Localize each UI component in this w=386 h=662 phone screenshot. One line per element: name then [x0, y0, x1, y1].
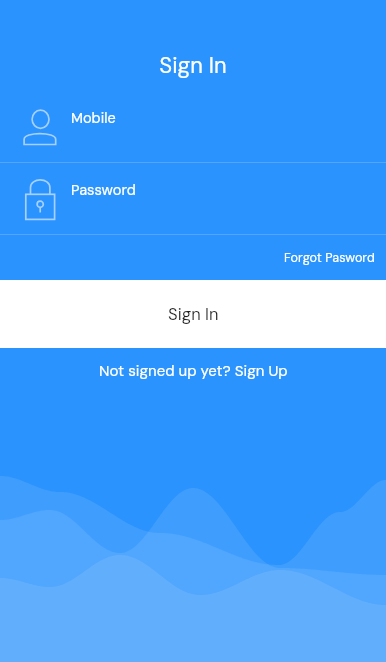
- staticText: Forgot Pasword: [284, 250, 375, 266]
- button[interactable]: Sign In: [0, 280, 386, 348]
- staticText: Sign In: [168, 304, 219, 325]
- button[interactable]: Forgot Pasword: [273, 242, 386, 274]
- button[interactable]: Password: [0, 163, 386, 235]
- button[interactable]: Mobile: [0, 90, 386, 162]
- staticText: Sign In: [0, 51, 386, 80]
- button[interactable]: Not signed up yet? Sign Up: [89, 357, 298, 385]
- staticText: Password: [71, 181, 136, 200]
- staticText: Mobile: [71, 109, 116, 128]
